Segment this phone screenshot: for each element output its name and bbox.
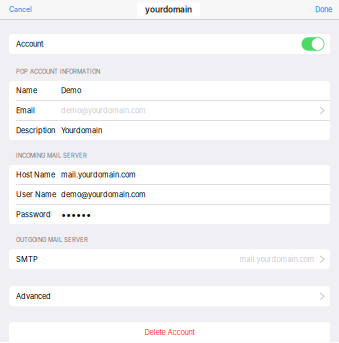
button[interactable]: Password bbox=[9, 205, 330, 224]
staticText: Email bbox=[16, 106, 35, 115]
staticText: Password bbox=[16, 210, 51, 219]
button[interactable]: Email bbox=[9, 101, 330, 120]
button[interactable]: Delete Account bbox=[9, 322, 330, 342]
staticText: SMTP bbox=[16, 255, 38, 264]
staticText: yourdomain bbox=[145, 4, 192, 14]
staticText: POP ACCOUNT INFORMATION bbox=[16, 68, 100, 75]
staticText: INCOMING MAIL SERVER bbox=[16, 152, 87, 159]
button[interactable]: SMTP bbox=[9, 249, 330, 269]
staticText: Description bbox=[16, 126, 55, 135]
button[interactable]: Cancel bbox=[6, 0, 35, 19]
button[interactable]: Account enabled bbox=[301, 37, 324, 51]
staticText: Host Name bbox=[16, 170, 55, 179]
button[interactable]: Done bbox=[314, 0, 333, 19]
staticText: demo@yourdomain.com bbox=[61, 106, 146, 115]
staticText: User Name bbox=[16, 190, 56, 199]
staticText: •••••• bbox=[61, 209, 91, 220]
staticText: OUTGOING MAIL SERVER bbox=[16, 236, 88, 243]
button[interactable]: Name bbox=[9, 81, 330, 100]
staticText: Demo bbox=[61, 86, 81, 95]
staticText: Name bbox=[16, 86, 37, 95]
staticText: Advanced bbox=[16, 292, 51, 301]
staticText: Delete Account bbox=[144, 328, 194, 337]
staticText: Cancel bbox=[9, 5, 32, 14]
staticText: Done bbox=[315, 5, 332, 14]
staticText: Yourdomain bbox=[61, 126, 102, 135]
button[interactable]: Host Name bbox=[9, 165, 330, 184]
button[interactable]: Advanced bbox=[9, 286, 330, 306]
staticText: demo@yourdomain.com bbox=[61, 190, 146, 199]
button[interactable]: User Name bbox=[9, 185, 330, 204]
staticText: mail.yourdomain.com bbox=[240, 255, 315, 264]
staticText: mail.yourdomain.com bbox=[61, 170, 136, 179]
staticText: Account bbox=[16, 39, 43, 48]
button[interactable]: Description bbox=[9, 121, 330, 140]
